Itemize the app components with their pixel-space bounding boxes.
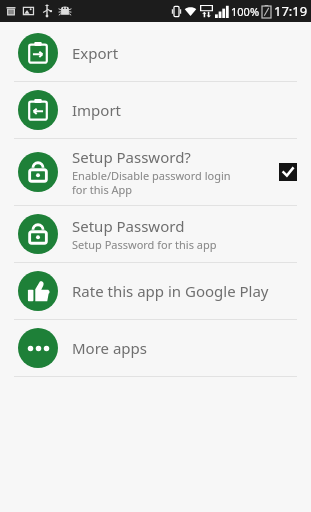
staticText: Setup Password [72, 216, 185, 236]
staticText: Export [72, 43, 119, 63]
button[interactable]: Rate this app in Google Play [0, 263, 311, 319]
staticText: More apps [72, 338, 147, 358]
staticText: Setup Password for this app [72, 237, 217, 252]
staticText: Rate this app in Google Play [72, 281, 269, 301]
staticText: Import [72, 100, 122, 120]
staticText: 17:19 [274, 2, 308, 20]
staticText: Enable/Disable password login for this A… [72, 168, 231, 197]
staticText: 100% [231, 4, 260, 19]
staticText: Setup Password? [72, 147, 191, 167]
button[interactable]: More apps [0, 320, 311, 376]
button[interactable]: Setup Password [0, 206, 311, 262]
button[interactable]: Enable password login checkbox [279, 163, 297, 181]
button[interactable]: Setup Password? [0, 139, 311, 205]
button[interactable]: Import [0, 82, 311, 138]
button[interactable]: Export [0, 25, 311, 81]
